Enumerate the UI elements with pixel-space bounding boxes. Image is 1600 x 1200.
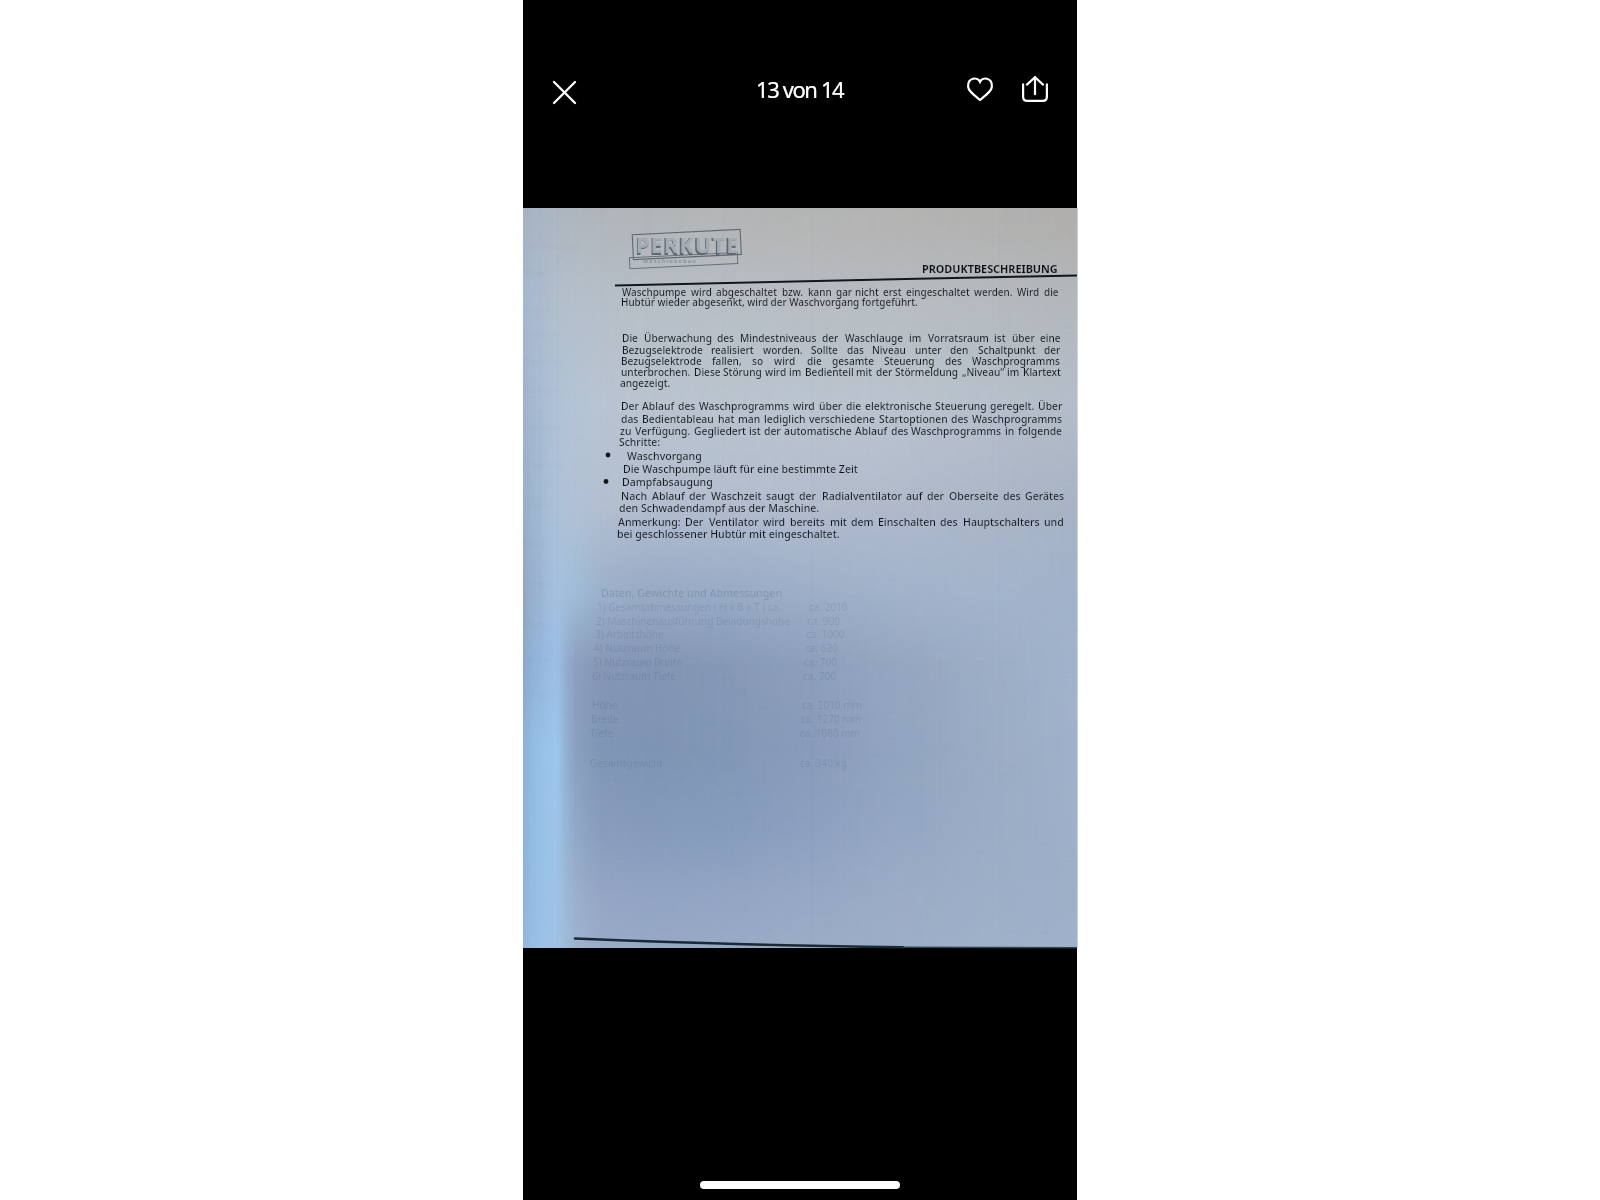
staticText: der bbox=[689, 489, 707, 503]
staticText: der bbox=[927, 489, 945, 503]
staticText: ca. 1080 mm bbox=[800, 726, 860, 740]
staticText: Ablauf bbox=[642, 399, 675, 413]
staticText: der bbox=[764, 424, 781, 438]
staticText: „Niveau“ bbox=[962, 365, 1005, 379]
staticText: fallen, bbox=[712, 354, 742, 368]
staticText: unterbrochen. bbox=[621, 365, 691, 379]
staticText: Waschvorgang bbox=[627, 449, 702, 463]
staticText: saugt bbox=[766, 489, 795, 503]
staticText: ca. 2010 mm bbox=[802, 698, 862, 712]
staticText: wird bbox=[691, 285, 712, 298]
staticText: Der bbox=[621, 399, 639, 413]
staticText: ca. 700 bbox=[803, 669, 836, 683]
staticText: 2) Maschinenausführung Beladungshöhe bbox=[596, 614, 790, 628]
button[interactable]: Close bbox=[541, 69, 588, 116]
staticText: des bbox=[951, 412, 969, 426]
staticText: bereits bbox=[790, 515, 825, 529]
staticText: Wird bbox=[1017, 285, 1040, 298]
staticText: Klartext bbox=[1023, 365, 1061, 379]
staticText: Schritte: bbox=[619, 435, 661, 449]
staticText: der bbox=[799, 489, 817, 503]
staticText: Bezugselektrode bbox=[622, 343, 703, 357]
staticText: mit bbox=[830, 515, 847, 529]
staticText: Vorratsraum bbox=[928, 331, 989, 345]
staticText: lediglich bbox=[764, 412, 806, 426]
staticText: eingeschaltet bbox=[906, 285, 970, 298]
staticText: unter bbox=[915, 343, 942, 357]
staticText: des bbox=[1003, 489, 1021, 503]
staticText: folgende bbox=[1018, 424, 1062, 438]
staticText: Hubtür bbox=[524, 500, 551, 511]
staticText: Waschen bbox=[523, 384, 557, 395]
staticText: ca. 2010 bbox=[809, 600, 848, 614]
staticText: eine bbox=[1040, 331, 1061, 345]
staticText: abgeschaltet bbox=[716, 285, 778, 298]
button[interactable]: Share bbox=[1012, 66, 1058, 112]
staticText: Dampfabsaugung bbox=[622, 475, 713, 489]
staticText: des bbox=[945, 354, 962, 368]
staticText: ca. 620 bbox=[805, 641, 838, 655]
staticText: Gegliedert bbox=[694, 424, 747, 438]
staticText: das bbox=[847, 343, 864, 357]
staticText: Störmeldung bbox=[895, 365, 959, 379]
staticText: 6) Nutzraum Tiefe bbox=[592, 669, 676, 683]
staticText: Steuerung bbox=[884, 354, 935, 368]
staticText: des bbox=[678, 399, 696, 413]
staticText: so bbox=[752, 354, 764, 368]
staticText: den Schwadendampf aus der Maschine. bbox=[619, 501, 820, 515]
staticText: Gerätes bbox=[1025, 489, 1065, 503]
staticText: Druck bbox=[523, 618, 546, 629]
staticText: Ventilator bbox=[525, 422, 562, 433]
staticText: mit bbox=[856, 365, 873, 379]
staticText: über bbox=[819, 399, 843, 413]
staticText: man bbox=[738, 412, 761, 426]
button[interactable]: Favourite bbox=[957, 65, 1003, 111]
staticText: Pumpe bbox=[524, 578, 551, 589]
staticText: nicht bbox=[855, 285, 879, 298]
staticText: bzw. bbox=[782, 285, 804, 298]
staticText: Über bbox=[1038, 399, 1063, 413]
staticText: 13 von 14 bbox=[756, 74, 844, 104]
staticText: Niveau bbox=[872, 343, 906, 357]
staticText: des bbox=[940, 515, 958, 529]
staticText: die bbox=[846, 399, 862, 413]
staticText: Steuerung bbox=[935, 399, 987, 413]
staticText: auf bbox=[906, 489, 923, 503]
staticText: ca. 1270 mm bbox=[801, 712, 861, 726]
staticText: Gesamtgewicht bbox=[590, 756, 663, 770]
staticText: die bbox=[1044, 285, 1059, 298]
staticText: dem bbox=[851, 515, 874, 529]
staticText: Sollte bbox=[811, 343, 838, 357]
staticText: verschiedene bbox=[809, 412, 875, 426]
staticText: Waschprogramms bbox=[972, 412, 1063, 426]
staticText: Einschalten bbox=[878, 515, 936, 529]
staticText: elektronische bbox=[865, 399, 932, 413]
staticText: Bedientableau bbox=[642, 412, 714, 426]
staticText: ca. 1000 bbox=[806, 627, 845, 641]
staticText: geregelt. bbox=[990, 399, 1035, 413]
staticText: Waschpumpe bbox=[622, 285, 687, 298]
staticText: Waschprogramms bbox=[972, 354, 1060, 368]
staticText: Bedienteil bbox=[523, 328, 561, 339]
staticText: Ventilator bbox=[709, 515, 759, 529]
staticText: erst bbox=[883, 285, 902, 298]
staticText: PERKUTE bbox=[635, 230, 738, 261]
staticText: des bbox=[717, 331, 734, 345]
staticText: Anmerkung: bbox=[618, 515, 681, 529]
staticText: 4) Nutzraum Höhe bbox=[594, 641, 681, 655]
staticText: Ablauf bbox=[652, 489, 685, 503]
staticText: Technik bbox=[523, 690, 552, 701]
staticText: im bbox=[909, 331, 922, 345]
staticText: Anlage bbox=[523, 538, 550, 549]
staticText: Höhe bbox=[592, 698, 618, 712]
staticText: Wasser bbox=[524, 654, 552, 665]
staticText: Niveau bbox=[523, 266, 550, 277]
staticText: Waschlauge bbox=[845, 331, 904, 345]
staticText: Bezugselektrode bbox=[621, 354, 702, 368]
staticText: Überwachung bbox=[644, 331, 712, 345]
button[interactable]: Page 13 of 14 bbox=[523, 208, 1077, 948]
staticText: Radialventilator bbox=[822, 489, 902, 503]
staticText: Hubtür wieder abgesenkt, wird der Waschv… bbox=[621, 295, 918, 308]
staticText: Hauptschalter bbox=[525, 241, 579, 252]
staticText: Der bbox=[685, 515, 704, 529]
